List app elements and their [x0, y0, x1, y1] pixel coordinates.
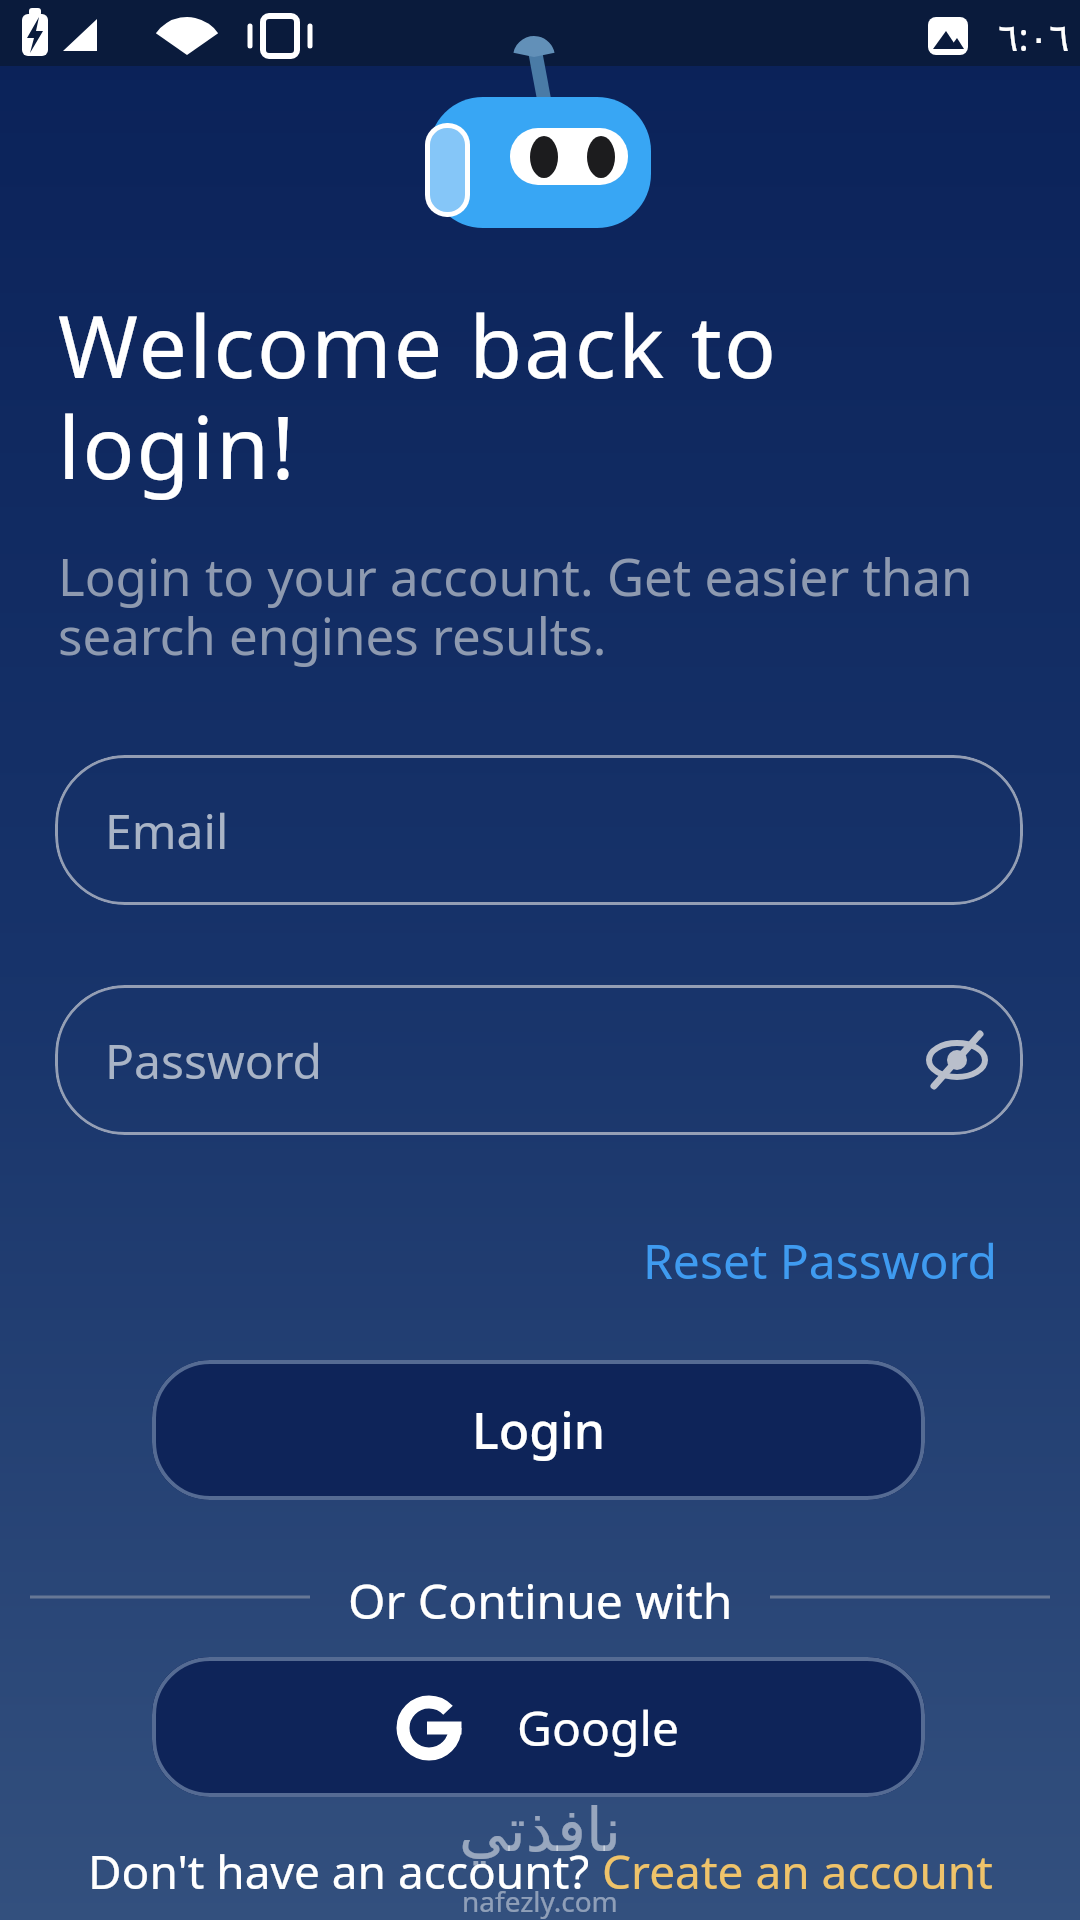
staticText: nafezly.com — [462, 1882, 618, 1920]
staticText: Or Continue with — [348, 1568, 733, 1633]
staticText: Don't have an account? — [88, 1840, 602, 1903]
button[interactable] — [925, 1028, 989, 1092]
staticText: Password — [105, 1028, 323, 1093]
button[interactable]: Email — [55, 755, 1023, 905]
button[interactable]: Create an account — [602, 1840, 993, 1903]
staticText: Welcome back to login! — [58, 286, 779, 504]
staticText: Login to your account. Get easier than s… — [58, 541, 973, 670]
staticText: نافذتي — [459, 1795, 621, 1865]
staticText: Email — [105, 798, 229, 863]
staticText: ٦:٠٦ — [998, 10, 1070, 62]
button[interactable]: Google — [152, 1657, 925, 1797]
button[interactable]: Login — [152, 1360, 925, 1500]
button[interactable]: Reset Password — [643, 1228, 997, 1293]
button[interactable]: Password — [55, 985, 1023, 1135]
staticText: Login — [472, 1396, 606, 1464]
staticText: Google — [517, 1695, 680, 1760]
